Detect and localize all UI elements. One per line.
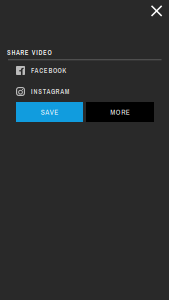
staticText: SAVE <box>41 107 58 117</box>
staticText: MORE <box>110 107 130 117</box>
button[interactable]: MORE <box>86 102 154 122</box>
staticText: INSTAGRAM <box>31 87 70 96</box>
button[interactable]: FACEBOOK <box>0 60 169 81</box>
staticText: FACEBOOK <box>31 66 66 75</box>
button[interactable]: SAVE <box>16 102 83 122</box>
staticText: SHARE VIDEO <box>7 48 51 57</box>
button[interactable]: Close <box>146 0 167 21</box>
button[interactable]: INSTAGRAM <box>0 81 169 102</box>
